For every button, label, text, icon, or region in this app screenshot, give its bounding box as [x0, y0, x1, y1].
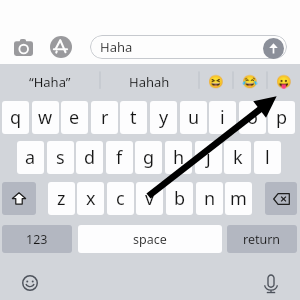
button[interactable]: Emoji 😂: [233, 64, 267, 95]
button[interactable]: w: [32, 101, 59, 134]
button[interactable]: z: [48, 182, 75, 215]
button[interactable]: x: [77, 182, 104, 215]
staticText: l: [265, 145, 270, 170]
button[interactable]: Haha: [90, 35, 287, 59]
button[interactable]: b: [166, 182, 193, 215]
button[interactable]: d: [76, 141, 103, 174]
button[interactable]: Emoji 😛: [267, 64, 300, 95]
staticText: Hahah: [129, 73, 170, 91]
staticText: p: [276, 105, 288, 130]
button[interactable]: c: [107, 182, 134, 215]
button[interactable]: Take photo: [8, 33, 38, 62]
staticText: y: [159, 105, 169, 130]
button[interactable]: l: [254, 141, 281, 174]
button[interactable]: n: [196, 182, 223, 215]
button[interactable]: y: [150, 101, 177, 134]
staticText: 😆: [208, 74, 224, 89]
staticText: j: [206, 145, 211, 170]
button[interactable]: o: [239, 101, 266, 134]
staticText: return: [243, 231, 281, 248]
button[interactable]: Emoji 😆: [199, 64, 233, 95]
staticText: b: [174, 186, 186, 211]
staticText: w: [38, 105, 53, 130]
staticText: d: [84, 145, 96, 170]
staticText: a: [25, 145, 36, 170]
button[interactable]: m: [225, 182, 252, 215]
staticText: r: [101, 105, 109, 130]
button[interactable]: k: [224, 141, 251, 174]
button[interactable]: i: [209, 101, 236, 134]
button[interactable]: j: [195, 141, 222, 174]
staticText: h: [173, 145, 185, 170]
staticText: i: [220, 105, 225, 130]
button[interactable]: g: [135, 141, 162, 174]
button[interactable]: Shift: [2, 182, 36, 215]
button[interactable]: Backspace: [265, 182, 297, 215]
button[interactable]: Dictation: [258, 271, 283, 296]
button[interactable]: return: [227, 225, 297, 253]
staticText: 123: [26, 231, 48, 248]
staticText: k: [233, 145, 243, 170]
button[interactable]: 123: [2, 225, 72, 253]
staticText: u: [188, 105, 200, 130]
button[interactable]: Hahah: [100, 64, 199, 95]
button[interactable]: App Store: [50, 36, 72, 58]
button[interactable]: s: [47, 141, 74, 174]
staticText: Haha: [100, 38, 133, 56]
staticText: t: [130, 105, 137, 130]
staticText: “Haha”: [29, 73, 71, 91]
button[interactable]: “Haha”: [0, 64, 100, 95]
staticText: q: [10, 105, 22, 130]
staticText: v: [145, 186, 155, 211]
staticText: o: [247, 105, 258, 130]
staticText: m: [230, 186, 247, 211]
staticText: e: [69, 105, 80, 130]
button[interactable]: t: [120, 101, 147, 134]
button[interactable]: p: [268, 101, 295, 134]
staticText: 😂: [242, 74, 258, 89]
staticText: x: [86, 186, 96, 211]
button[interactable]: q: [2, 101, 29, 134]
button[interactable]: a: [17, 141, 44, 174]
button[interactable]: r: [91, 101, 118, 134]
staticText: 😛: [276, 74, 292, 89]
button[interactable]: e: [61, 101, 88, 134]
button[interactable]: u: [180, 101, 207, 134]
staticText: z: [57, 186, 66, 211]
staticText: c: [116, 186, 125, 211]
staticText: n: [204, 186, 216, 211]
staticText: f: [116, 145, 123, 170]
staticText: space: [133, 231, 167, 248]
button[interactable]: Send: [263, 38, 284, 59]
staticText: s: [56, 145, 65, 170]
button[interactable]: v: [136, 182, 163, 215]
button[interactable]: space: [78, 225, 222, 253]
button[interactable]: Emoji keyboard: [18, 271, 42, 295]
staticText: g: [143, 145, 155, 170]
button[interactable]: f: [106, 141, 133, 174]
button[interactable]: h: [165, 141, 192, 174]
